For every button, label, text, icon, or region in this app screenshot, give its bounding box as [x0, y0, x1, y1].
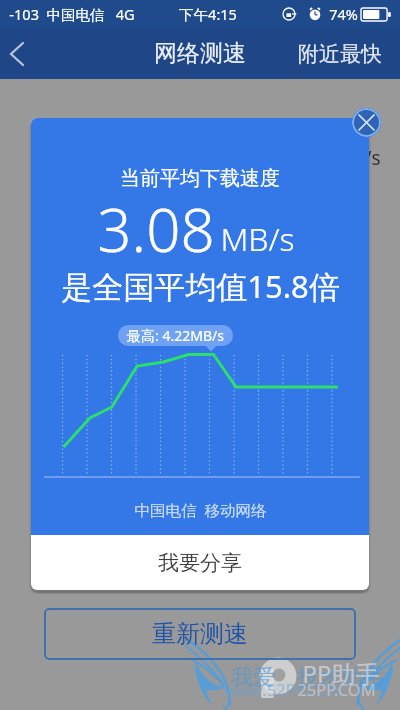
- staticText: 是全国平均值15.8倍: [61, 265, 340, 307]
- button[interactable]: Back: [0, 28, 34, 79]
- other: Rotation lock: [282, 7, 296, 21]
- staticText: 74%: [329, 4, 358, 24]
- button[interactable]: 我要分享: [31, 535, 369, 590]
- staticText: MB/s: [220, 217, 295, 261]
- staticText: 重新测速: [152, 619, 248, 649]
- button[interactable]: Close: [352, 108, 381, 137]
- staticText: 附近最快: [298, 41, 382, 67]
- button[interactable]: 重新测速: [44, 608, 356, 660]
- staticText: 我要分享: [158, 550, 242, 576]
- staticText: 我爱: [231, 664, 275, 692]
- button[interactable]: 附近最快: [280, 28, 400, 79]
- staticText: 当前平均下载速度: [120, 166, 280, 191]
- staticText: 25PP.COM: [297, 678, 376, 700]
- staticText: 3.08: [97, 188, 215, 270]
- other: Alarm: [308, 7, 322, 21]
- other: Battery 74%: [361, 8, 391, 21]
- staticText: 最高: 4.22MB/s: [127, 326, 224, 345]
- staticText: -103 中国电信 4G: [9, 4, 135, 24]
- staticText: 技术助手: [297, 664, 385, 692]
- staticText: 网络测速: [154, 39, 246, 68]
- staticText: 中国电信 移动网络: [134, 499, 267, 520]
- staticText: 下午4:15: [179, 4, 237, 24]
- staticText: /s: [364, 145, 381, 171]
- staticText: www.52PP.COM: [224, 678, 345, 700]
- staticText: PP助手: [302, 657, 380, 690]
